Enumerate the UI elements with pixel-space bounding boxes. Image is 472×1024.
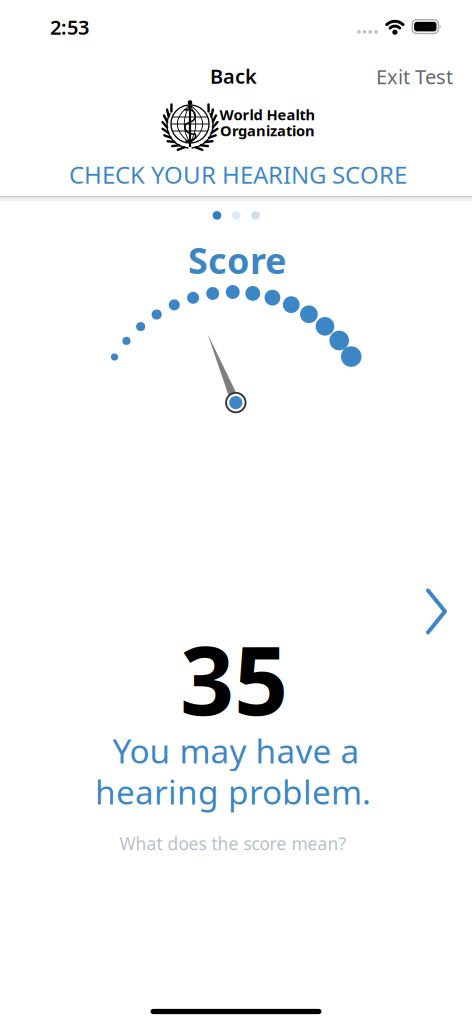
staticText: You may have a — [112, 728, 359, 773]
staticText: What does the score mean? — [119, 832, 346, 855]
staticText: 35 — [180, 616, 288, 741]
staticText: hearing problem. — [95, 769, 371, 814]
staticText: 2:53 — [50, 14, 89, 40]
staticText: Exit Test — [376, 63, 453, 90]
button[interactable]: Next — [419, 588, 455, 634]
staticText: World Health — [219, 105, 315, 124]
button[interactable]: Back — [202, 55, 265, 97]
staticText: Organization — [220, 121, 315, 140]
button[interactable]: What does the score mean? — [113, 826, 352, 861]
staticText: CHECK YOUR HEARING SCORE — [69, 159, 407, 190]
staticText: Back — [210, 63, 257, 89]
staticText: Score — [188, 236, 286, 284]
button[interactable]: Exit Test — [368, 55, 461, 98]
